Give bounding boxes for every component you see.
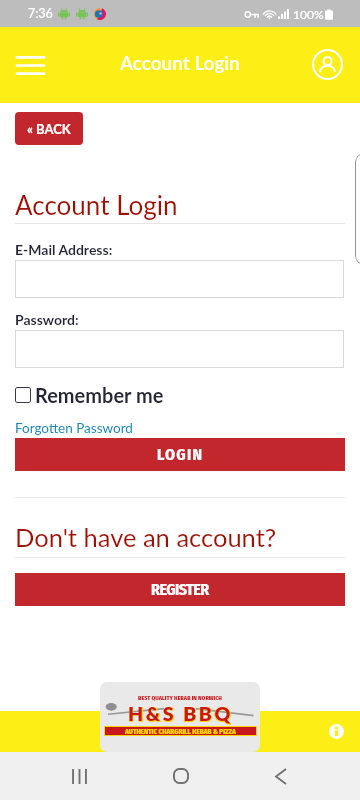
staticText: H&S BBQ — [128, 702, 233, 725]
button[interactable] — [15, 260, 344, 298]
staticText: Don't have an account? — [15, 522, 277, 553]
staticText: Account Login — [120, 51, 240, 74]
button[interactable]: Remember me — [15, 383, 164, 407]
button[interactable]: Forgotten Password — [15, 420, 133, 436]
button[interactable]: Advertisement — [100, 682, 260, 752]
staticText: BEST QUALITY KEBAB IN NORWICH — [138, 694, 222, 701]
button[interactable]: Ad information — [324, 719, 348, 743]
staticText: E-Mail Address: — [15, 241, 113, 258]
staticText: Password: — [15, 311, 79, 328]
staticText: REGISTER — [151, 580, 209, 599]
button[interactable]: LOGIN — [15, 438, 345, 471]
staticText: 100% — [293, 7, 324, 21]
button[interactable]: REGISTER — [15, 573, 345, 606]
button[interactable]: Account — [303, 40, 351, 88]
button[interactable] — [15, 330, 344, 368]
button[interactable]: Recent apps — [55, 752, 104, 800]
button[interactable]: Home — [156, 752, 205, 800]
staticText: LOGIN — [157, 445, 204, 464]
button[interactable]: « BACK — [15, 112, 83, 145]
staticText: AUTHENTIC CHARGRILL KEBAB & PIZZA — [125, 727, 236, 735]
staticText: Remember me — [35, 383, 164, 407]
button[interactable]: Back — [256, 752, 305, 800]
staticText: 7:36 — [28, 6, 53, 21]
staticText: H&S BBQ — [128, 701, 233, 726]
button[interactable]: Open navigation menu — [6, 41, 54, 89]
staticText: Account Login — [15, 189, 178, 220]
staticText: « BACK — [27, 121, 71, 137]
